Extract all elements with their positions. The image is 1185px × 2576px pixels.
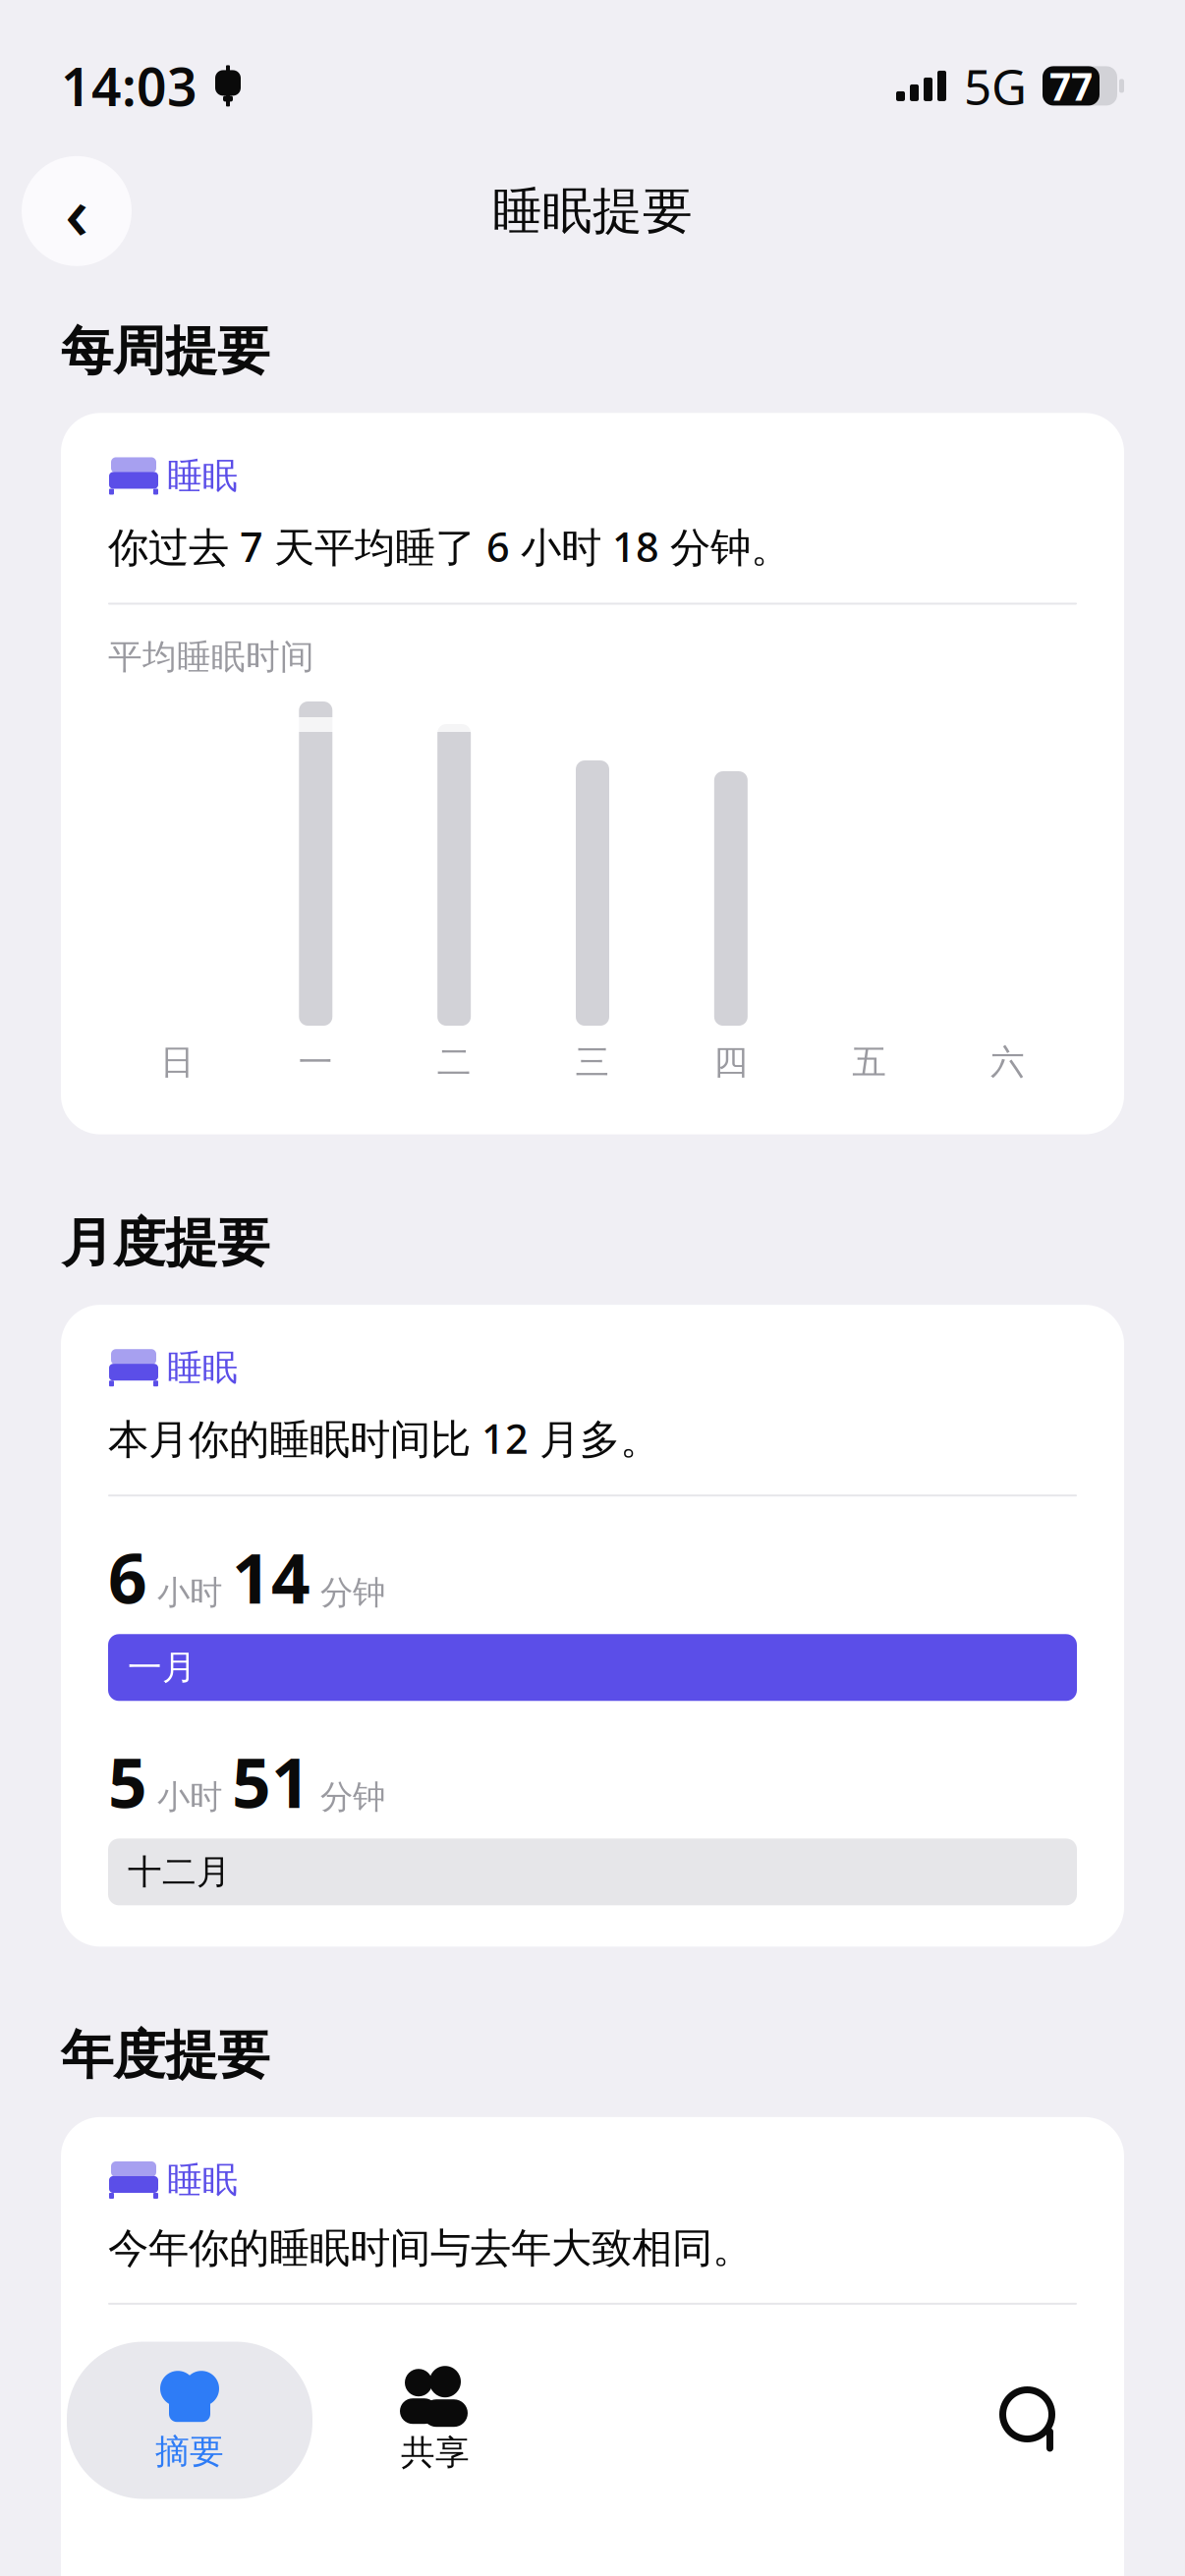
staticText: 五 [852, 1041, 886, 1083]
button[interactable]: 返回 [22, 156, 132, 266]
staticText: 5 [108, 1736, 147, 1827]
staticText: 睡眠 [167, 2158, 238, 2202]
staticText: 睡眠 [167, 454, 238, 498]
staticText: 三 [575, 1041, 610, 1083]
staticText: 二 [437, 1041, 471, 1083]
staticText: 月度提要 [61, 1211, 269, 1275]
staticText: 共享 [401, 2432, 470, 2474]
staticText: 本月你的睡眠时间比 12 月多。 [108, 1411, 660, 1465]
button[interactable]: 共享 [312, 2342, 558, 2499]
staticText: 日 [160, 1041, 194, 1083]
staticText: 14 [232, 1532, 310, 1622]
staticText: 四 [714, 1041, 748, 1083]
staticText: 小时 [147, 1573, 232, 1613]
staticText: 一月 [128, 1647, 197, 1688]
staticText: 每周提要 [61, 319, 269, 383]
staticText: 睡眠 [167, 1346, 238, 1389]
button[interactable]: 搜索 [942, 2329, 1124, 2511]
staticText: 77 [1049, 61, 1093, 111]
staticText: 摘要 [155, 2431, 224, 2473]
staticText: 51 [232, 1736, 310, 1827]
staticText: 5G [964, 54, 1027, 118]
staticText: 小时 [147, 1777, 232, 1817]
button[interactable]: 摘要 [67, 2342, 312, 2499]
staticText: 6 [108, 1532, 147, 1622]
staticText: 平均睡眠时间 [108, 636, 314, 678]
staticText: 十二月 [128, 1851, 231, 1893]
staticText: 一 [299, 1041, 333, 1083]
staticText: ‹ [65, 162, 88, 260]
staticText: 睡眠提要 [492, 180, 693, 242]
staticText: 六 [991, 1041, 1025, 1083]
staticText: 分钟 [310, 1573, 385, 1613]
staticText: 你过去 7 天平均睡了 6 小时 18 分钟。 [108, 519, 791, 573]
staticText: 分钟 [310, 1777, 385, 1817]
staticText: 14:03 [61, 51, 197, 121]
staticText: 年度提要 [61, 2023, 269, 2088]
staticText: 今年你的睡眠时间与去年大致相同。 [108, 2223, 753, 2273]
